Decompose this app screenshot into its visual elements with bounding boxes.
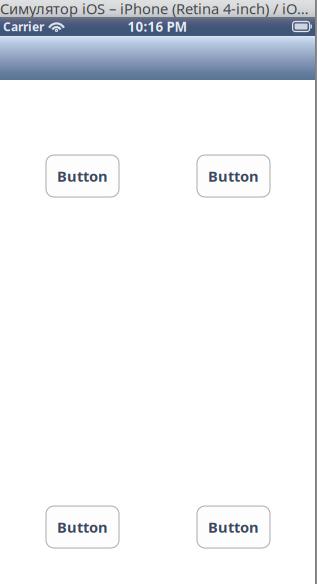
staticText: Симулятор iOS – iPhone (Retina 4-inch) /… bbox=[0, 0, 315, 18]
staticText: Button bbox=[208, 166, 259, 186]
staticText: Button bbox=[57, 517, 108, 537]
button[interactable]: Button bbox=[197, 155, 270, 197]
staticText: Button bbox=[57, 166, 108, 186]
staticText: Carrier bbox=[3, 18, 44, 34]
button[interactable]: Button bbox=[197, 506, 270, 548]
button[interactable]: Button bbox=[46, 155, 119, 197]
staticText: 10:16 PM bbox=[127, 18, 187, 35]
button[interactable]: Button bbox=[46, 506, 119, 548]
staticText: Button bbox=[208, 517, 259, 537]
